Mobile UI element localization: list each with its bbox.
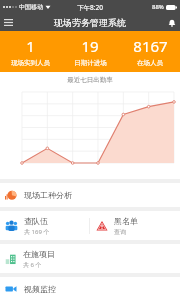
staticText: 查询 — [114, 228, 126, 236]
staticText: 日期计进场 — [74, 59, 107, 67]
other: Blacklist — [96, 220, 108, 232]
button[interactable]: Video monitoring — [0, 277, 180, 300]
button[interactable]: Teams — [0, 211, 89, 240]
staticText: 中国移动 — [19, 3, 43, 11]
button[interactable]: 1 — [0, 31, 60, 72]
staticText: 1 — [26, 36, 35, 56]
button[interactable]: Notifications — [163, 14, 180, 31]
staticText: 在场人员 — [137, 59, 163, 67]
staticText: 共 6 个 — [23, 261, 42, 269]
button[interactable]: 19 — [60, 31, 120, 72]
other: Projects under construction — [5, 253, 17, 265]
other: Teams — [5, 219, 18, 232]
staticText: 88% — [152, 3, 164, 11]
staticText: 现场实到人员 — [11, 59, 50, 67]
staticText: 下午8:20 — [77, 3, 103, 12]
staticText: 查队伍 — [24, 216, 48, 226]
staticText: 19 — [81, 36, 99, 56]
staticText: 视频监控 — [24, 284, 56, 294]
button[interactable]: Projects under construction — [0, 244, 180, 273]
staticText: 8167 — [133, 36, 168, 56]
other: Work type analysis — [5, 189, 17, 201]
staticText: 在施项目 — [23, 249, 55, 259]
staticText: 黑名单 — [114, 216, 138, 226]
staticText: 共 169 个 — [24, 228, 50, 236]
other: Video monitoring — [5, 283, 17, 295]
button[interactable]: Work type analysis — [0, 183, 180, 207]
staticText: 最近七日出勤率 — [0, 76, 180, 84]
button[interactable]: Menu — [0, 14, 17, 31]
button[interactable]: 8167 — [120, 31, 180, 72]
staticText: 现场劳务管理系统 — [54, 17, 126, 28]
staticText: 现场工种分析 — [24, 190, 72, 200]
button[interactable]: Blacklist — [90, 211, 180, 240]
